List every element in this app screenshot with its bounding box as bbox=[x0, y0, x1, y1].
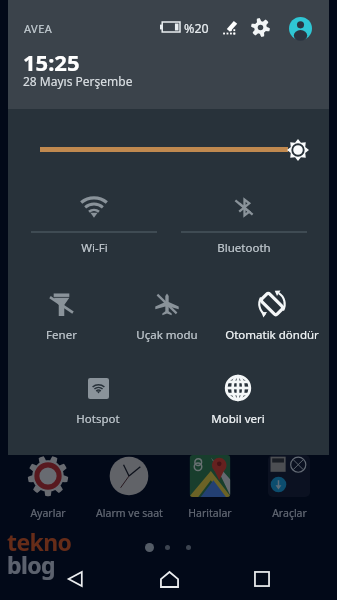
staticText: Araçlar bbox=[272, 506, 307, 520]
staticText: Mobil veri bbox=[211, 411, 265, 427]
button[interactable]: Settings bbox=[247, 14, 273, 40]
staticText: Haritalar bbox=[188, 506, 232, 520]
button[interactable]: Recent apps bbox=[222, 558, 302, 600]
staticText: Bluetooth bbox=[217, 240, 271, 256]
button[interactable] bbox=[170, 455, 250, 521]
button[interactable] bbox=[48, 362, 148, 424]
button[interactable] bbox=[222, 278, 322, 340]
staticText: Alarm ve saat bbox=[96, 506, 163, 520]
staticText: tekno bbox=[7, 526, 72, 557]
button[interactable] bbox=[169, 178, 319, 258]
staticText: Ayarlar bbox=[30, 506, 66, 520]
button[interactable]: Back bbox=[35, 558, 115, 600]
staticText: Fener bbox=[46, 327, 77, 343]
button[interactable] bbox=[8, 455, 88, 521]
button[interactable] bbox=[19, 178, 169, 258]
button[interactable]: Brightness bbox=[286, 138, 310, 162]
button[interactable] bbox=[249, 455, 329, 521]
staticText: AVEA bbox=[24, 21, 53, 36]
button[interactable]: Home bbox=[129, 558, 209, 600]
button[interactable] bbox=[11, 278, 111, 340]
button[interactable]: Edit quick settings bbox=[218, 15, 242, 39]
button[interactable] bbox=[188, 362, 288, 424]
staticText: 15:25 bbox=[23, 47, 80, 77]
staticText: Otomatik döndür bbox=[225, 327, 319, 343]
staticText: blog bbox=[7, 549, 55, 580]
button[interactable]: User profile bbox=[283, 11, 317, 45]
staticText: Wi-Fi bbox=[81, 240, 108, 256]
button[interactable] bbox=[89, 455, 169, 521]
staticText: Hotspot bbox=[76, 411, 120, 427]
staticText: 28 Mayıs Perşembe bbox=[23, 73, 133, 89]
button[interactable] bbox=[117, 278, 217, 340]
staticText: %20 bbox=[184, 20, 209, 37]
staticText: Uçak modu bbox=[136, 327, 198, 343]
